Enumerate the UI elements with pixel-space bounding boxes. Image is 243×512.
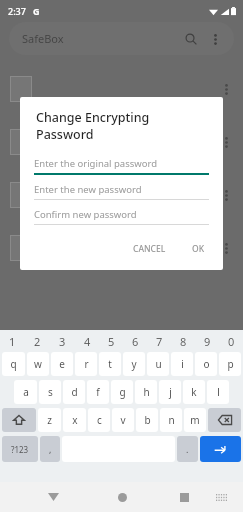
staticText: t xyxy=(108,357,112,371)
staticText: r xyxy=(84,357,89,371)
staticText: s xyxy=(48,385,53,399)
button[interactable]: Shift xyxy=(2,408,36,432)
button[interactable]: Backspace xyxy=(208,408,241,432)
button[interactable]: e xyxy=(51,352,73,376)
button[interactable]: q xyxy=(2,352,25,376)
button[interactable]: t xyxy=(99,352,121,376)
staticText: y xyxy=(131,357,137,371)
staticText: CANCEL xyxy=(133,243,166,255)
button[interactable]: s xyxy=(39,380,61,404)
staticText: v xyxy=(120,413,126,427)
button[interactable]: 2 xyxy=(25,333,50,350)
staticText: . xyxy=(186,443,189,455)
staticText: k xyxy=(191,385,197,399)
button[interactable]: Recent apps xyxy=(173,486,195,508)
staticText: g xyxy=(119,385,126,399)
staticText: o xyxy=(203,357,210,371)
button[interactable]: z xyxy=(38,408,61,432)
staticText: 4 xyxy=(84,334,91,349)
button[interactable]: Enter xyxy=(200,436,241,462)
button[interactable]: l xyxy=(207,380,229,404)
button[interactable]: u xyxy=(147,352,169,376)
staticText: d xyxy=(71,385,78,399)
staticText: h xyxy=(143,385,150,399)
staticText: 8 xyxy=(180,334,187,349)
button[interactable]: c xyxy=(88,408,110,432)
button[interactable]: 3 xyxy=(50,333,75,350)
staticText: i xyxy=(181,357,184,371)
button[interactable]: j xyxy=(159,380,181,404)
button[interactable]: 5 xyxy=(99,333,123,350)
button[interactable]: Item menu xyxy=(215,237,237,259)
button[interactable]: r xyxy=(75,352,97,376)
staticText: 2:37 xyxy=(8,5,26,17)
button[interactable]: . xyxy=(177,436,198,462)
button[interactable]: v xyxy=(112,408,134,432)
button[interactable]: g xyxy=(111,380,133,404)
button[interactable]: SafeBox xyxy=(9,22,234,55)
staticText: x xyxy=(72,413,78,427)
button[interactable]: Item menu xyxy=(0,168,243,221)
button[interactable]: h xyxy=(135,380,157,404)
staticText: Enter the new password xyxy=(34,183,142,196)
button[interactable]: f xyxy=(87,380,109,404)
staticText: u xyxy=(155,357,162,371)
button[interactable]: Item menu xyxy=(215,184,237,206)
staticText: q xyxy=(10,357,17,371)
button[interactable]: x xyxy=(63,408,86,432)
button[interactable]: a xyxy=(14,380,37,404)
staticText: Confirm new password xyxy=(34,208,137,221)
button[interactable]: More options xyxy=(204,28,226,50)
staticText: b xyxy=(144,413,151,427)
button[interactable]: Switch keyboard xyxy=(211,487,231,507)
staticText: 1 xyxy=(9,334,16,349)
staticText: j xyxy=(169,385,172,399)
button[interactable]: 0 xyxy=(219,333,243,350)
button[interactable]: d xyxy=(63,380,85,404)
staticText: f xyxy=(96,385,100,399)
staticText: Change Encrypting Password xyxy=(36,109,207,143)
staticText: 7 xyxy=(156,334,163,349)
button[interactable]: Search xyxy=(180,28,202,50)
button[interactable]: Item menu xyxy=(0,62,243,115)
button[interactable]: 9 xyxy=(195,333,219,350)
button[interactable]: 1 xyxy=(0,333,25,350)
button[interactable]: i xyxy=(171,352,193,376)
staticText: 5 xyxy=(108,334,115,349)
button[interactable]: m xyxy=(184,408,206,432)
staticText: w xyxy=(34,357,42,371)
staticText: p xyxy=(227,357,234,371)
staticText: G xyxy=(33,5,40,17)
staticText: 2 xyxy=(34,334,41,349)
staticText: n xyxy=(168,413,175,427)
button[interactable]: CANCEL xyxy=(125,238,174,260)
button[interactable]: w xyxy=(27,352,49,376)
staticText: z xyxy=(47,413,52,427)
button[interactable]: 6 xyxy=(123,333,147,350)
staticText: c xyxy=(97,413,102,427)
button[interactable]: k xyxy=(183,380,205,404)
staticText: l xyxy=(217,385,220,399)
button[interactable]: , xyxy=(40,436,60,462)
staticText: e xyxy=(59,357,65,371)
button[interactable]: ?123 xyxy=(2,436,38,462)
button[interactable]: o xyxy=(195,352,217,376)
button[interactable]: Item menu xyxy=(0,221,243,274)
button[interactable]: 8 xyxy=(171,333,195,350)
staticText: SafeBox xyxy=(22,31,64,46)
button[interactable]: 4 xyxy=(75,333,99,350)
button[interactable]: Item menu xyxy=(215,78,237,100)
button[interactable]: p xyxy=(219,352,241,376)
button[interactable]: Item menu xyxy=(215,131,237,153)
button[interactable]: b xyxy=(136,408,158,432)
button[interactable]: OK xyxy=(184,238,213,260)
button[interactable]: Item menu xyxy=(0,115,243,168)
staticText: 9 xyxy=(204,334,211,349)
button[interactable]: 7 xyxy=(147,333,171,350)
staticText: 0 xyxy=(228,334,235,349)
button[interactable]: Home xyxy=(111,486,133,508)
button[interactable]: y xyxy=(123,352,145,376)
button[interactable]: Back xyxy=(42,486,64,508)
button[interactable]: n xyxy=(160,408,182,432)
